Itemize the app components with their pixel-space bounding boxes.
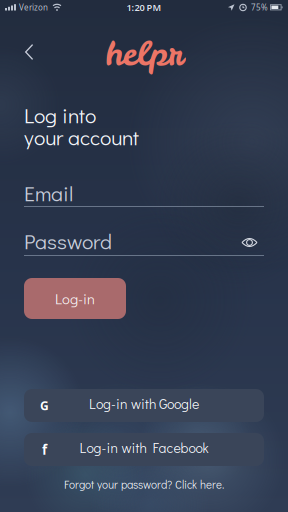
- button[interactable]: Log-in with Google: [24, 389, 264, 422]
- button[interactable]: [17, 36, 42, 68]
- staticText: your account: [24, 123, 139, 151]
- staticText: Log-in: [55, 289, 95, 308]
- staticText: Log into: [24, 101, 96, 129]
- staticText: 1:20 PM: [126, 1, 161, 14]
- staticText: Password: [24, 227, 112, 255]
- staticText: Forgot your password?: [64, 477, 175, 492]
- button[interactable]: [235, 231, 264, 254]
- staticText: Email: [24, 179, 73, 207]
- button[interactable]: Log-in: [24, 278, 126, 319]
- staticText: 75%: [251, 2, 268, 13]
- staticText: G: [40, 397, 49, 413]
- button[interactable]: Click here.: [175, 477, 224, 492]
- staticText: helpr: [105, 31, 183, 76]
- staticText: Log-in with Facebook: [79, 438, 208, 457]
- button[interactable]: Log-in with Facebook: [24, 433, 264, 466]
- staticText: Verizon: [19, 2, 48, 13]
- staticText: Log-in with Google: [89, 394, 199, 413]
- staticText: Click here.: [175, 477, 224, 492]
- staticText: f: [42, 441, 47, 458]
